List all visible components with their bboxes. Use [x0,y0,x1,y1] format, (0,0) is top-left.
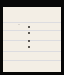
button[interactable]: More options [28,40,30,42]
